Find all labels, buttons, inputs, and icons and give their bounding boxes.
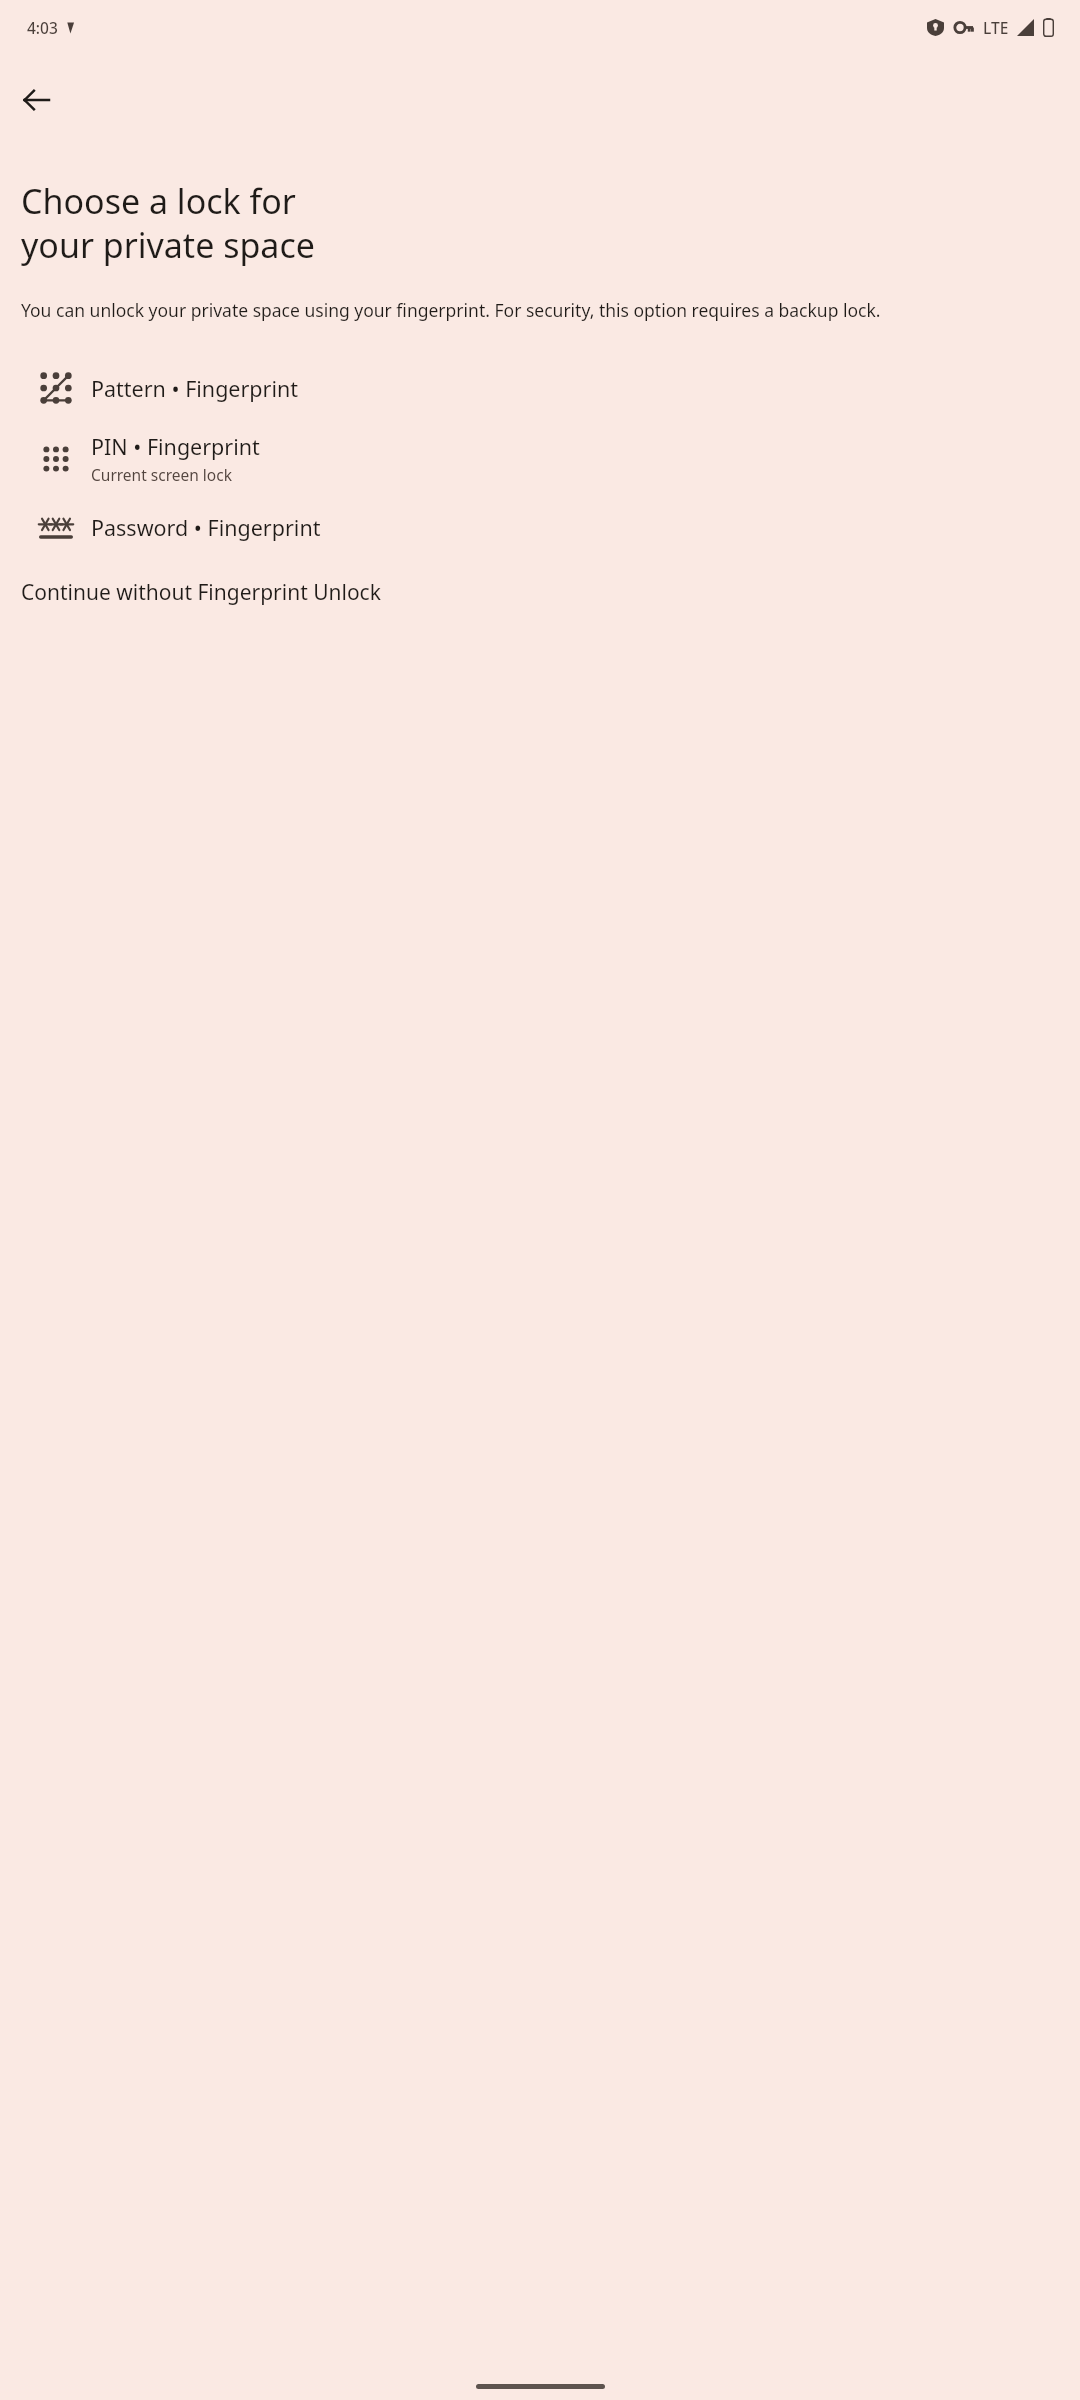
button[interactable]: Back bbox=[8, 72, 64, 128]
button[interactable]: Continue without Fingerprint Unlock bbox=[0, 566, 1080, 619]
staticText: LTE bbox=[983, 17, 1009, 38]
staticText: Current screen lock bbox=[91, 464, 232, 485]
staticText: You can unlock your private space using … bbox=[21, 298, 881, 322]
staticText: Continue without Fingerprint Unlock bbox=[21, 578, 381, 607]
staticText: Choose a lock for your private space bbox=[21, 178, 315, 268]
staticText: Pattern • Fingerprint bbox=[91, 374, 299, 403]
staticText: PIN • Fingerprint bbox=[91, 432, 260, 461]
button[interactable]: Pattern • Fingerprint bbox=[0, 358, 1080, 418]
staticText: 4:03 bbox=[27, 17, 58, 38]
staticText: Password • Fingerprint bbox=[91, 513, 321, 542]
button[interactable]: PIN • Fingerprint bbox=[0, 418, 1080, 499]
button[interactable]: Password • Fingerprint bbox=[0, 499, 1080, 556]
